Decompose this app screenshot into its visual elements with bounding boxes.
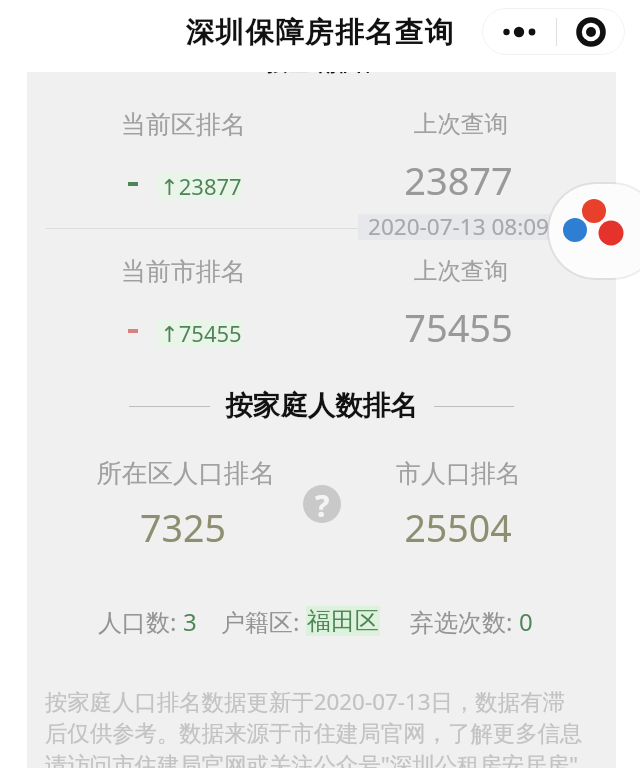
staticText: 弃选次数: [410, 605, 519, 637]
staticText: 人口数: [98, 605, 183, 637]
button[interactable]: App logo badge [549, 184, 640, 278]
button[interactable]: Close [557, 8, 625, 55]
staticText: 25504 [404, 502, 512, 553]
staticText: 按家庭人数排名 [225, 389, 418, 424]
staticText: 市人口排名 [396, 458, 521, 489]
staticText: ↑75455 [160, 318, 242, 348]
staticText: 23877 [404, 154, 513, 206]
staticText: 按家庭人口排名数据更新于2020-07-13日，数据有滞 后仅供参考。数据来源于… [45, 686, 583, 768]
staticText: 当前市排名 [121, 256, 246, 287]
button[interactable]: More options [482, 8, 556, 55]
staticText: 2020-07-13 08:09 [368, 211, 549, 242]
staticText: 福田区 [307, 606, 379, 636]
staticText: 所在区人口排名 [96, 457, 275, 489]
staticText: 上次查询 [414, 109, 508, 139]
staticText: 当前区排名 [121, 109, 246, 140]
staticText: 按区域排名 [265, 51, 373, 77]
staticText: 上次查询 [414, 256, 508, 286]
staticText: 户籍区: [221, 605, 306, 637]
staticText: 3 [183, 605, 197, 637]
staticText: ? [315, 485, 330, 523]
staticText: 7325 [140, 502, 226, 553]
button[interactable]: Help [303, 485, 341, 523]
staticText: ↑23877 [160, 171, 242, 201]
staticText: 深圳保障房排名查询 [185, 15, 455, 51]
staticText: 75455 [404, 301, 513, 353]
staticText: 0 [519, 605, 533, 637]
